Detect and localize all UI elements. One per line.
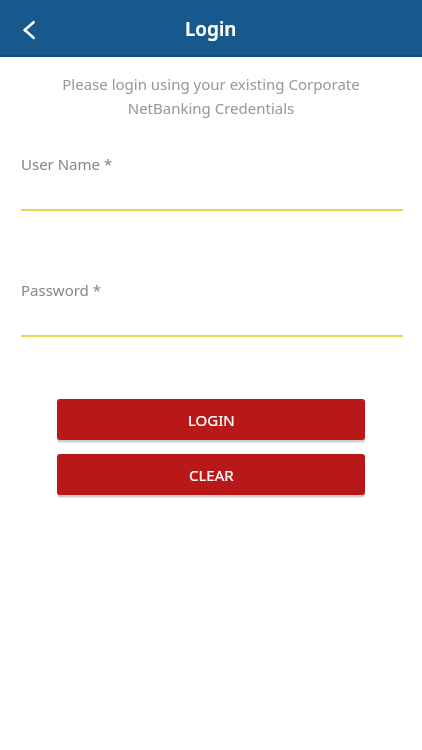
staticText: Login [185,16,237,42]
button[interactable]: User Name * [21,154,403,211]
staticText: LOGIN [188,410,235,430]
button[interactable]: LOGIN [57,399,365,440]
button[interactable]: Back [8,7,54,53]
staticText: Password * [21,280,102,300]
button[interactable]: CLEAR [57,454,365,495]
staticText: Please login using your existing Corpora… [36,74,386,118]
staticText: CLEAR [189,465,234,485]
staticText: User Name * [21,154,113,174]
button[interactable]: Password * [21,280,403,337]
